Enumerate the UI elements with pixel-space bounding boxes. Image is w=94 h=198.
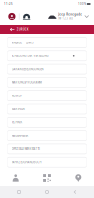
button[interactable]: WARTUNGSPROGRAMM: [7, 77, 86, 87]
button[interactable]: Jeep Renegade: [48, 13, 89, 20]
staticText: OFFIZIELLE WERKSTÄTTE: [11, 147, 39, 151]
button[interactable]: FAHRZEUGHANDBUCH: [7, 157, 86, 167]
staticText: STARTHILFE: [11, 107, 24, 111]
button[interactable]: Markenlogo: [8, 13, 15, 20]
button[interactable]: Händler finden: [63, 170, 94, 186]
button[interactable]: Mein Profil: [0, 170, 31, 186]
staticText: ZURÜCK: [17, 28, 29, 31]
button[interactable]: SCHALTUNG DER VERTEILUNG: [7, 51, 86, 61]
button[interactable]: Startbildschirm: [38, 186, 56, 198]
button[interactable]: OFFIZIELLE WERKSTÄTTE: [7, 144, 86, 154]
button[interactable]: TECHNIK: [7, 117, 86, 127]
staticText: GARANTIEBEDINGUNGEN: [11, 67, 43, 71]
staticText: WF 123 AB: [58, 17, 73, 20]
staticText: ANLAGE: [11, 41, 21, 44]
button[interactable]: Zuletzt verwendet: [10, 186, 28, 198]
staticText: TECHNIK: [11, 120, 22, 124]
button[interactable]: ANLAGE: [7, 37, 86, 47]
button[interactable]: STARTHILFE: [7, 104, 86, 114]
button[interactable]: Code scannen: [31, 170, 63, 186]
button[interactable]: ZURÜCK: [10, 25, 32, 34]
staticText: Jeep Renegade: [58, 13, 82, 16]
staticText: WAGENHEBER: [11, 134, 28, 137]
staticText: 100%: [78, 2, 86, 6]
staticText: SCHALTUNG DER VERTEILUNG: [11, 54, 48, 57]
staticText: FAHRZEUGHANDBUCH: [11, 160, 41, 164]
staticText: 11:25: [4, 2, 13, 6]
button[interactable]: WAGENHEBER: [7, 131, 86, 141]
staticText: NOTRUF: [11, 94, 21, 97]
staticText: LINKS: [26, 41, 33, 44]
staticText: WARTUNGSPROGRAMM: [11, 81, 41, 84]
button[interactable]: GARANTIEBEDINGUNGEN: [7, 64, 86, 74]
button[interactable]: Zurück: [66, 186, 84, 198]
button[interactable]: NOTRUF: [7, 91, 86, 101]
